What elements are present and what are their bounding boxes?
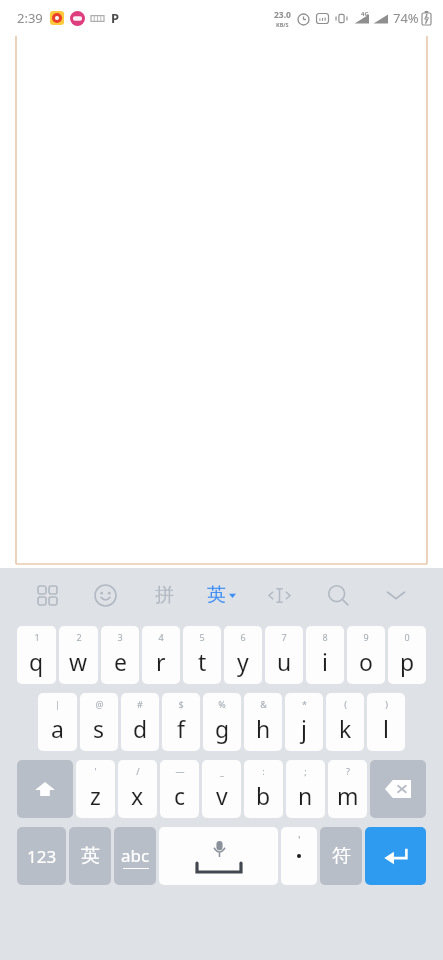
- staticText: KB/S: [276, 21, 289, 28]
- staticText: 4: [158, 631, 164, 643]
- staticText: 符: [332, 844, 351, 868]
- button[interactable]: 英: [205, 583, 238, 607]
- button[interactable]: 4: [142, 626, 180, 684]
- button[interactable]: Move cursor: [262, 578, 296, 612]
- staticText: P: [111, 9, 120, 27]
- staticText: v: [216, 780, 228, 811]
- staticText: m: [337, 780, 359, 811]
- button[interactable]: 1: [17, 626, 56, 684]
- staticText: ?: [346, 765, 350, 777]
- button[interactable]: 123: [17, 827, 66, 885]
- staticText: #: [137, 698, 143, 710]
- button[interactable]: 8: [306, 626, 344, 684]
- staticText: c: [174, 780, 186, 811]
- staticText: |: [55, 698, 60, 710]
- button[interactable]: Emoji: [88, 578, 122, 612]
- button[interactable]: 9: [347, 626, 385, 684]
- staticText: u: [277, 646, 292, 677]
- staticText: 9: [363, 631, 369, 643]
- staticText: 1: [34, 631, 40, 643]
- staticText: 英: [207, 583, 226, 607]
- staticText: f: [177, 713, 185, 744]
- button[interactable]: #: [121, 693, 159, 751]
- button[interactable]: (: [326, 693, 364, 751]
- button[interactable]: 6: [224, 626, 262, 684]
- staticText: 2:39: [17, 9, 43, 27]
- staticText: r: [156, 646, 166, 677]
- button[interactable]: Shift: [17, 760, 73, 818]
- button[interactable]: 3: [101, 626, 139, 684]
- staticText: 74%: [393, 9, 419, 27]
- staticText: /: [136, 765, 140, 777]
- staticText: 4G: [361, 10, 369, 18]
- staticText: _: [220, 765, 224, 777]
- staticText: ;: [304, 765, 307, 777]
- staticText: q: [29, 646, 44, 677]
- button[interactable]: 英: [69, 827, 111, 885]
- staticText: 2: [76, 631, 82, 643]
- staticText: —: [175, 765, 185, 777]
- button[interactable]: ;: [286, 760, 325, 818]
- button[interactable]: ': [76, 760, 115, 818]
- button[interactable]: ': [281, 827, 317, 885]
- button[interactable]: Hide keyboard: [379, 578, 413, 612]
- staticText: x: [131, 780, 144, 811]
- staticText: &: [260, 698, 267, 710]
- staticText: $: [178, 698, 184, 710]
- button[interactable]: 5: [183, 626, 221, 684]
- staticText: p: [400, 646, 415, 677]
- staticText: @: [95, 698, 104, 710]
- staticText: ': [94, 765, 97, 777]
- staticText: k: [339, 713, 352, 744]
- button[interactable]: /: [118, 760, 157, 818]
- staticText: 7: [281, 631, 287, 643]
- staticText: 123: [27, 845, 57, 868]
- staticText: j: [301, 713, 307, 744]
- button[interactable]: Keyboard layouts: [30, 578, 64, 612]
- staticText: n: [298, 780, 313, 811]
- button[interactable]: :: [244, 760, 283, 818]
- button[interactable]: 7: [265, 626, 303, 684]
- button[interactable]: *: [285, 693, 323, 751]
- button[interactable]: Search: [321, 578, 355, 612]
- button[interactable]: $: [162, 693, 200, 751]
- button[interactable]: 0: [388, 626, 426, 684]
- staticText: 8: [322, 631, 328, 643]
- staticText: 拼: [155, 583, 174, 607]
- button[interactable]: %: [203, 693, 241, 751]
- staticText: l: [383, 713, 389, 744]
- button[interactable]: abc: [114, 827, 156, 885]
- staticText: s: [93, 713, 105, 744]
- button[interactable]: Backspace: [370, 760, 426, 818]
- staticText: d: [133, 713, 148, 744]
- button[interactable]: |: [38, 693, 77, 751]
- button[interactable]: @: [80, 693, 118, 751]
- staticText: h: [256, 713, 271, 744]
- staticText: 3: [117, 631, 123, 643]
- button[interactable]: —: [160, 760, 199, 818]
- staticText: (: [344, 698, 347, 710]
- button[interactable]: Enter: [365, 827, 426, 885]
- staticText: 英: [81, 844, 100, 868]
- staticText: *: [302, 698, 307, 710]
- button[interactable]: 符: [320, 827, 362, 885]
- staticText: %: [218, 698, 226, 710]
- button[interactable]: 2: [59, 626, 98, 684]
- staticText: y: [237, 646, 249, 677]
- staticText: w: [69, 646, 88, 677]
- staticText: a: [51, 713, 64, 744]
- staticText: 5: [199, 631, 205, 643]
- button[interactable]: &: [244, 693, 282, 751]
- staticText: abc: [121, 844, 150, 867]
- staticText: t: [198, 646, 207, 677]
- staticText: ': [298, 832, 301, 847]
- button[interactable]: 拼: [147, 578, 181, 612]
- button[interactable]: _: [202, 760, 241, 818]
- staticText: b: [256, 780, 271, 811]
- staticText: g: [215, 713, 230, 744]
- staticText: i: [322, 646, 328, 677]
- button[interactable]: ): [367, 693, 405, 751]
- button[interactable]: ?: [328, 760, 367, 818]
- staticText: :: [262, 765, 265, 777]
- button[interactable]: Space: [159, 827, 278, 885]
